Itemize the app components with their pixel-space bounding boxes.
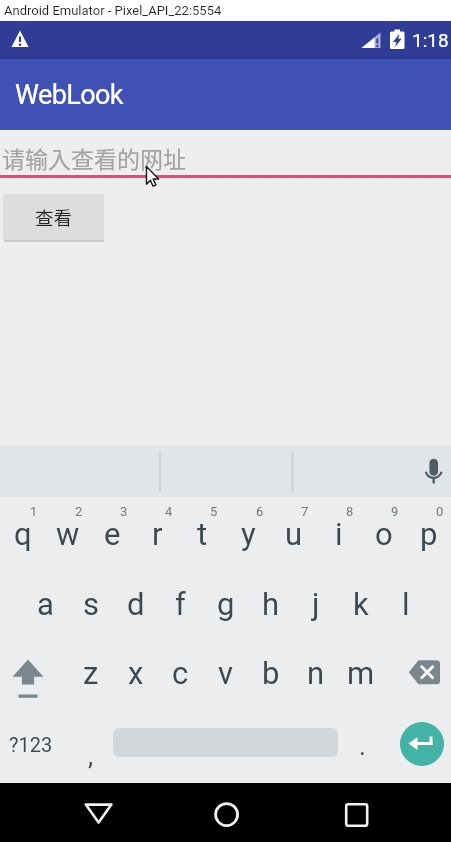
- staticText: i: [335, 516, 343, 552]
- staticText: 查看: [35, 204, 73, 231]
- staticText: 4: [165, 504, 173, 519]
- button[interactable]: [391, 638, 451, 708]
- staticText: 5: [210, 504, 218, 519]
- staticText: ?123: [9, 733, 53, 756]
- button[interactable]: [333, 791, 381, 839]
- staticText: ,: [88, 741, 94, 771]
- button[interactable]: ,: [68, 709, 113, 779]
- button[interactable]: m: [338, 638, 383, 708]
- staticText: a: [37, 586, 54, 622]
- staticText: y: [241, 516, 256, 552]
- button[interactable]: 查看: [3, 194, 104, 240]
- staticText: w: [56, 516, 80, 552]
- staticText: b: [262, 655, 280, 691]
- staticText: r: [152, 516, 163, 552]
- staticText: l: [402, 586, 410, 622]
- button[interactable]: z: [68, 638, 113, 708]
- button[interactable]: o: [361, 499, 406, 569]
- button[interactable]: [0, 638, 60, 708]
- button[interactable]: k: [338, 569, 383, 639]
- button[interactable]: i: [316, 499, 361, 569]
- staticText: n: [307, 655, 325, 691]
- button[interactable]: [75, 789, 123, 837]
- button[interactable]: l: [383, 569, 428, 639]
- staticText: e: [104, 516, 121, 552]
- button[interactable]: [203, 790, 251, 838]
- button[interactable]: b: [248, 638, 293, 708]
- staticText: Android Emulator - Pixel_API_22:5554: [4, 3, 222, 18]
- button[interactable]: f: [158, 569, 203, 639]
- staticText: 8: [346, 504, 354, 519]
- button[interactable]: x: [113, 638, 158, 708]
- button[interactable]: v: [203, 638, 248, 708]
- button[interactable]: t: [180, 499, 225, 569]
- button[interactable]: a: [23, 569, 68, 639]
- staticText: 6: [256, 504, 264, 519]
- button[interactable]: y: [226, 499, 271, 569]
- button[interactable]: r: [135, 499, 180, 569]
- button[interactable]: d: [113, 569, 158, 639]
- staticText: h: [262, 586, 280, 622]
- staticText: g: [217, 586, 235, 622]
- staticText: 1:18: [412, 29, 449, 51]
- staticText: WebLook: [15, 79, 123, 111]
- staticText: s: [83, 586, 99, 622]
- staticText: u: [285, 516, 303, 552]
- staticText: q: [14, 516, 32, 552]
- button[interactable]: w: [45, 499, 90, 569]
- staticText: 2: [75, 504, 83, 519]
- button[interactable]: c: [158, 638, 203, 708]
- staticText: v: [218, 655, 234, 691]
- button[interactable]: s: [68, 569, 113, 639]
- staticText: 0: [436, 504, 444, 519]
- staticText: d: [127, 586, 145, 622]
- button[interactable]: h: [248, 569, 293, 639]
- staticText: z: [83, 655, 99, 691]
- staticText: j: [312, 586, 320, 622]
- button[interactable]: g: [203, 569, 248, 639]
- button[interactable]: [400, 722, 444, 766]
- button[interactable]: ?123: [6, 709, 56, 779]
- button[interactable]: q: [0, 499, 45, 569]
- staticText: .: [359, 731, 366, 761]
- staticText: 1: [30, 504, 38, 519]
- staticText: m: [347, 655, 375, 691]
- button[interactable]: e: [90, 499, 135, 569]
- button[interactable]: p: [406, 499, 451, 569]
- button[interactable]: n: [293, 638, 338, 708]
- staticText: t: [197, 516, 208, 552]
- staticText: p: [420, 516, 438, 552]
- button[interactable]: u: [271, 499, 316, 569]
- staticText: 请输入查看的网址: [2, 141, 186, 174]
- button[interactable]: [415, 446, 451, 497]
- button[interactable]: j: [293, 569, 338, 639]
- staticText: 9: [391, 504, 399, 519]
- staticText: k: [353, 586, 369, 622]
- staticText: f: [175, 586, 186, 622]
- staticText: 3: [120, 504, 128, 519]
- staticText: x: [128, 655, 144, 691]
- button[interactable]: .: [340, 709, 385, 779]
- staticText: c: [172, 655, 189, 691]
- staticText: o: [375, 516, 393, 552]
- staticText: 7: [301, 504, 309, 519]
